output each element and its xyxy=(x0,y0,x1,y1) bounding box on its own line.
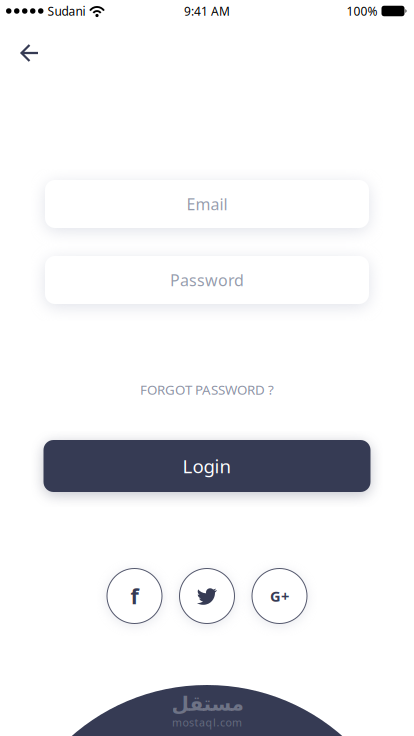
staticText: f xyxy=(130,582,138,610)
staticText: Sudani xyxy=(47,3,85,19)
staticText: FORGOT PASSWORD ? xyxy=(140,381,274,398)
staticText: 100% xyxy=(346,3,377,19)
staticText: Login xyxy=(182,454,231,478)
staticText: Password xyxy=(170,269,244,291)
staticText: 9:41 AM xyxy=(184,3,230,19)
button[interactable]: Password xyxy=(45,256,369,304)
button[interactable]: Sign in with Google xyxy=(252,568,307,623)
button[interactable]: Sign in with Facebook xyxy=(107,568,162,623)
button[interactable]: Back xyxy=(9,33,50,73)
button[interactable]: FORGOT PASSWORD ? xyxy=(82,372,332,406)
button[interactable]: Login xyxy=(43,440,370,492)
staticText: mostaql.com xyxy=(172,715,242,729)
staticText: مستقل xyxy=(171,692,243,715)
staticText: Email xyxy=(186,193,227,215)
button[interactable]: Sign in with Twitter xyxy=(179,568,234,623)
staticText: G+ xyxy=(270,586,289,606)
button[interactable]: Email xyxy=(45,180,369,228)
